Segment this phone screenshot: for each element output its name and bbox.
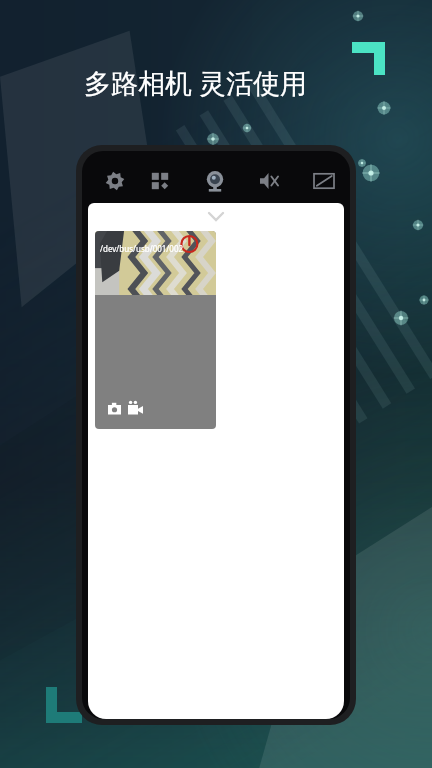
button[interactable]: /dev/bus/usb/001/002 xyxy=(95,231,216,429)
button[interactable]: Apps xyxy=(143,169,177,203)
button[interactable]: Settings xyxy=(98,169,132,203)
button[interactable]: Mute xyxy=(252,169,286,203)
button[interactable]: Camera xyxy=(198,169,232,203)
button[interactable]: Cast xyxy=(307,169,341,203)
staticText: /dev/bus/usb/001/002 xyxy=(100,243,184,254)
staticText: 多路相机 灵活使用 xyxy=(84,64,364,101)
